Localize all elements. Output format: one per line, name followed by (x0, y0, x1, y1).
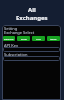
staticText: MEXC (50, 37, 57, 40)
staticText: Setting (4, 26, 18, 31)
button[interactable] (3, 56, 60, 61)
staticText: Subscription (4, 52, 28, 57)
staticText: Bybit (21, 37, 27, 40)
button[interactable]: Bybit (17, 36, 30, 41)
button[interactable]: Binance (3, 36, 15, 41)
button[interactable]: OKX (32, 36, 45, 41)
button[interactable] (3, 47, 60, 52)
staticText: Exchange Select (4, 30, 35, 35)
staticText: Exchanges (16, 14, 48, 22)
button[interactable]: MEXC (47, 36, 60, 41)
staticText: API Key (4, 43, 19, 48)
staticText: All (28, 6, 36, 14)
staticText: Binance (4, 37, 14, 40)
staticText: OKX (36, 37, 41, 40)
